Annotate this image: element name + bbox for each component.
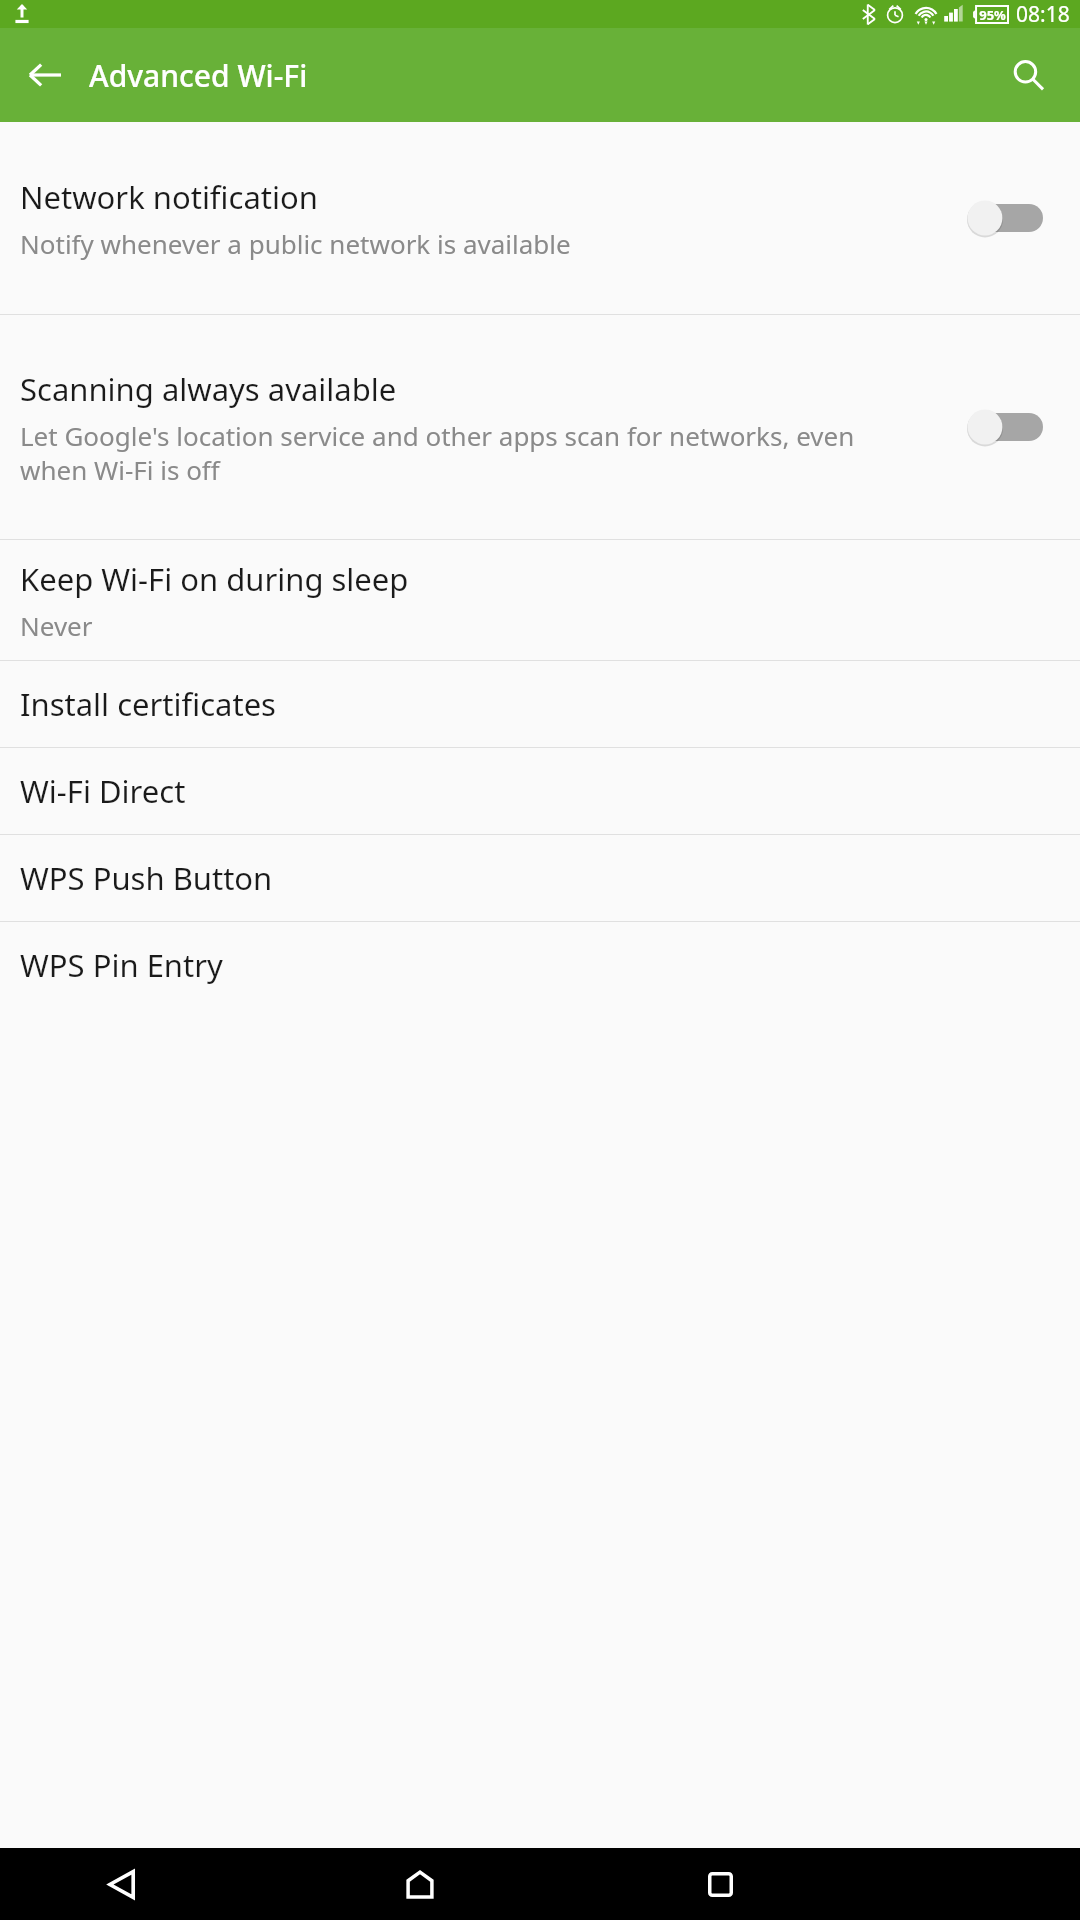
staticText: Never bbox=[20, 608, 93, 643]
button[interactable]: Back bbox=[70, 1848, 170, 1920]
staticText: Install certificates bbox=[20, 683, 276, 725]
staticText: Advanced Wi-Fi bbox=[89, 55, 308, 96]
staticText: Wi-Fi Direct bbox=[20, 770, 186, 812]
staticText: 08:18 bbox=[1016, 0, 1070, 28]
button[interactable]: Install certificates bbox=[0, 661, 1080, 747]
button[interactable]: Home bbox=[370, 1848, 470, 1920]
button[interactable]: Toggle bbox=[930, 122, 1080, 314]
button[interactable]: Recent apps bbox=[670, 1848, 770, 1920]
button[interactable]: WPS Push Button bbox=[0, 835, 1080, 921]
button[interactable]: Toggle bbox=[930, 315, 1080, 539]
staticText: 95% bbox=[979, 6, 1006, 24]
button[interactable]: Network notification bbox=[0, 122, 1080, 314]
staticText: WPS Push Button bbox=[20, 857, 273, 899]
staticText: Keep Wi-Fi on during sleep bbox=[20, 558, 409, 600]
staticText: WPS Pin Entry bbox=[20, 944, 223, 986]
staticText: Let Google's location service and other … bbox=[20, 418, 918, 487]
button[interactable]: WPS Pin Entry bbox=[0, 922, 1080, 1008]
button[interactable]: Wi-Fi Direct bbox=[0, 748, 1080, 834]
staticText: Notify whenever a public network is avai… bbox=[20, 226, 571, 261]
button[interactable]: Navigate up bbox=[14, 44, 76, 106]
button[interactable]: Keep Wi-Fi on during sleep bbox=[0, 540, 1080, 660]
staticText: Scanning always available bbox=[20, 368, 397, 410]
button[interactable]: Scanning always available bbox=[0, 315, 1080, 539]
staticText: Network notification bbox=[20, 176, 318, 218]
button[interactable]: Search bbox=[996, 43, 1060, 107]
